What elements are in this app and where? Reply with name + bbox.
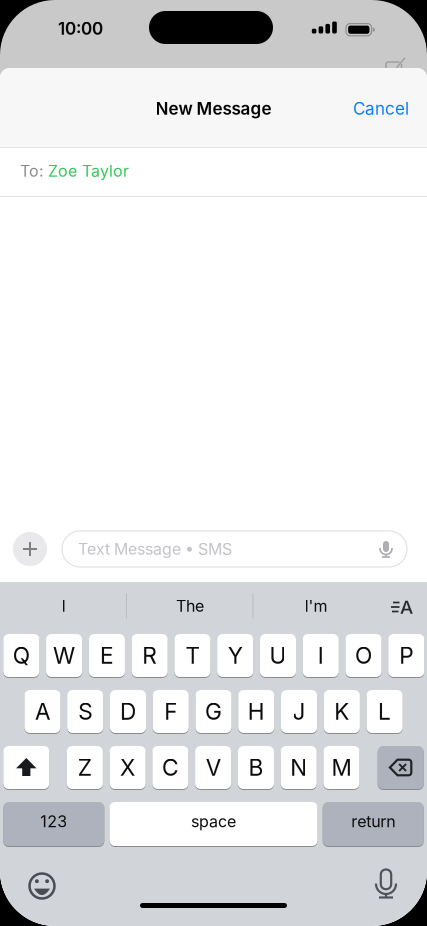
- button[interactable]: D: [110, 689, 146, 734]
- button[interactable]: A: [390, 598, 414, 615]
- staticText: O: [355, 642, 372, 669]
- staticText: X: [120, 754, 135, 781]
- staticText: Zoe Taylor: [48, 161, 129, 181]
- button[interactable]: Text Message • SMS: [62, 531, 407, 567]
- button[interactable]: C: [152, 745, 188, 790]
- staticText: U: [269, 642, 286, 669]
- staticText: J: [293, 698, 306, 725]
- staticText: Cancel: [353, 98, 409, 119]
- staticText: M: [331, 754, 351, 781]
- staticText: G: [205, 698, 222, 725]
- button[interactable]: V: [195, 745, 231, 790]
- staticText: return: [351, 812, 395, 831]
- button[interactable]: The: [130, 588, 250, 624]
- button[interactable]: I: [303, 633, 339, 678]
- button[interactable]: A: [24, 689, 60, 734]
- button[interactable]: L: [367, 689, 403, 734]
- staticText: I: [318, 642, 324, 669]
- staticText: W: [53, 642, 75, 669]
- staticText: E: [100, 642, 114, 669]
- button[interactable]: [373, 868, 399, 900]
- staticText: R: [142, 642, 157, 669]
- button[interactable]: T: [174, 633, 210, 678]
- staticText: Q: [13, 642, 30, 669]
- button[interactable]: O: [345, 633, 382, 678]
- button[interactable]: space: [109, 801, 317, 847]
- staticText: 10:00: [58, 18, 103, 39]
- staticText: B: [248, 754, 263, 781]
- staticText: A: [35, 698, 50, 725]
- staticText: New Message: [155, 98, 271, 119]
- button[interactable]: S: [67, 689, 103, 734]
- button[interactable]: F: [153, 689, 189, 734]
- button[interactable]: B: [238, 745, 274, 790]
- button[interactable]: To:: [0, 147, 427, 195]
- staticText: D: [120, 698, 136, 725]
- staticText: H: [248, 698, 265, 725]
- button[interactable]: [3, 745, 49, 790]
- button[interactable]: J: [281, 689, 317, 734]
- button[interactable]: Z: [67, 745, 103, 790]
- staticText: P: [399, 642, 413, 669]
- button[interactable]: U: [260, 633, 296, 678]
- button[interactable]: P: [388, 633, 424, 678]
- staticText: L: [378, 698, 391, 725]
- button[interactable]: I'm: [256, 588, 376, 624]
- button[interactable]: X: [110, 745, 146, 790]
- button[interactable]: R: [132, 633, 168, 678]
- staticText: C: [162, 754, 179, 781]
- staticText: K: [334, 698, 349, 725]
- staticText: The: [176, 596, 204, 616]
- button[interactable]: return: [323, 801, 424, 847]
- staticText: T: [185, 642, 199, 669]
- button[interactable]: Q: [3, 633, 39, 678]
- staticText: 123: [40, 812, 67, 831]
- staticText: A: [400, 596, 413, 618]
- staticText: V: [206, 754, 221, 781]
- button[interactable]: [13, 532, 47, 566]
- button[interactable]: 123: [3, 801, 104, 847]
- button[interactable]: E: [89, 633, 125, 678]
- staticText: I: [61, 596, 65, 616]
- button[interactable]: [378, 745, 424, 790]
- button[interactable]: G: [195, 689, 232, 734]
- button[interactable]: W: [46, 633, 82, 678]
- button[interactable]: M: [323, 745, 359, 790]
- button[interactable]: H: [238, 689, 274, 734]
- staticText: To:: [20, 161, 44, 181]
- button[interactable]: K: [324, 689, 360, 734]
- button[interactable]: Cancel: [353, 98, 409, 119]
- button[interactable]: I: [3, 588, 123, 624]
- staticText: I'm: [304, 596, 327, 616]
- staticText: Text Message • SMS: [78, 539, 232, 559]
- button[interactable]: [26, 870, 58, 902]
- staticText: S: [78, 698, 92, 725]
- staticText: F: [164, 698, 177, 725]
- staticText: N: [290, 754, 307, 781]
- button[interactable]: N: [281, 745, 317, 790]
- button[interactable]: Y: [217, 633, 253, 678]
- staticText: Z: [78, 754, 92, 781]
- staticText: Y: [228, 642, 243, 669]
- staticText: space: [191, 812, 236, 831]
